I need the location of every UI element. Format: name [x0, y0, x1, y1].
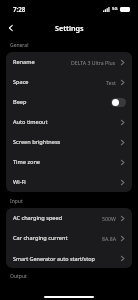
- button[interactable]: Space: [6, 72, 132, 92]
- staticText: DELTA 3 Ultra Plus: [71, 59, 116, 66]
- staticText: Screen brightness: [13, 138, 61, 146]
- staticText: Output: [10, 273, 27, 280]
- staticText: Auto timeout: [13, 118, 48, 126]
- button[interactable]: AC charging speed: [6, 208, 132, 228]
- staticText: 8A.8A: [102, 235, 116, 242]
- button[interactable]: Auto timeout: [6, 112, 132, 132]
- staticText: Settings: [55, 23, 84, 33]
- staticText: Smart Generator auto start/stop: [13, 255, 95, 262]
- staticText: General: [10, 42, 29, 49]
- staticText: AC charging speed: [13, 214, 63, 222]
- staticText: Test: [106, 79, 116, 86]
- staticText: 500W: [102, 215, 116, 222]
- staticText: Time zone: [13, 158, 41, 166]
- staticText: Rename: [13, 58, 35, 66]
- button[interactable]: Wi-Fi: [6, 172, 132, 192]
- button[interactable]: Smart Generator auto start/stop: [6, 248, 132, 268]
- staticText: Wi-Fi: [13, 178, 26, 186]
- button[interactable]: Rename: [6, 52, 132, 72]
- button[interactable]: Time zone: [6, 152, 132, 172]
- staticText: 7:28: [13, 5, 26, 13]
- staticText: Car charging current: [13, 234, 68, 242]
- button[interactable]: Beep switch: [111, 98, 126, 107]
- button[interactable]: Screen brightness: [6, 132, 132, 152]
- staticText: Space: [13, 78, 29, 86]
- button[interactable]: Beep: [6, 92, 132, 112]
- staticText: Input: [10, 198, 23, 205]
- staticText: Beep: [13, 98, 27, 106]
- button[interactable]: Car charging current: [6, 228, 132, 248]
- staticText: 5G: [112, 6, 118, 12]
- button[interactable]: Back: [3, 20, 19, 36]
